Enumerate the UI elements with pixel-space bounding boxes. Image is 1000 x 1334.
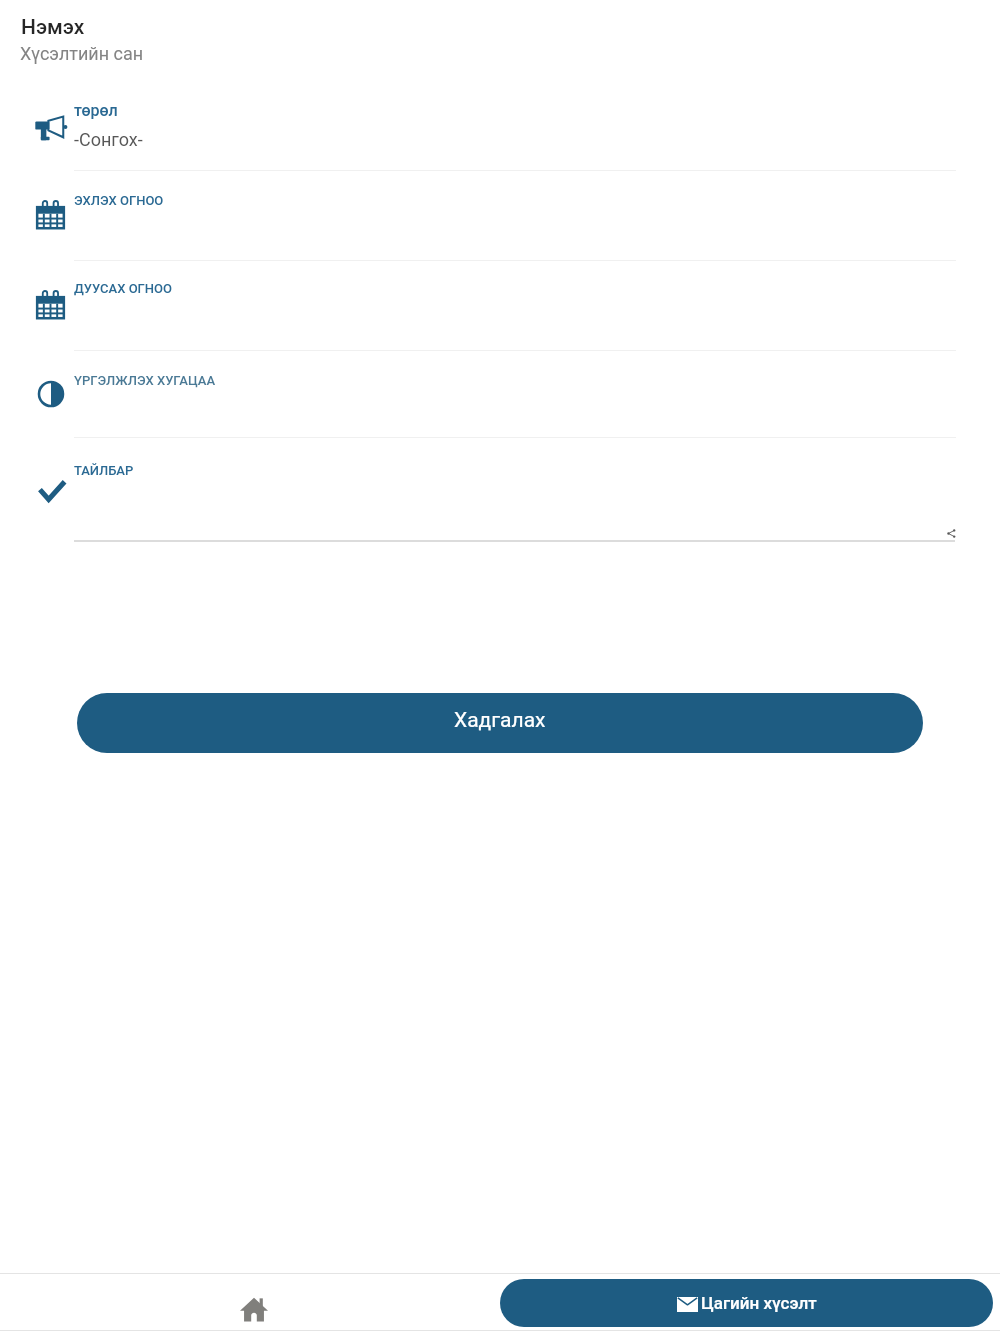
staticText: -Сонгох- [74,129,143,150]
button[interactable]: төрөл [0,81,1000,171]
staticText: ДУУСАХ ОГНОО [74,281,173,296]
button[interactable]: Цагийн хүсэлт [500,1279,993,1327]
staticText: Хүсэлтийн сан [20,43,144,64]
staticText: төрөл [74,101,118,120]
staticText: Цагийн хүсэлт [701,1293,817,1313]
button[interactable]: Хадгалах [77,693,923,753]
button[interactable]: Home [180,1274,326,1330]
staticText: ТАЙЛБАР [74,463,134,478]
button[interactable]: ЭХЛЭХ ОГНОО [0,171,1000,261]
button[interactable]: ДУУСАХ ОГНОО [0,261,1000,351]
staticText: Хадгалах [454,708,546,733]
staticText: ЭХЛЭХ ОГНОО [74,193,164,208]
staticText: Нэмэх [21,15,85,40]
button[interactable]: ҮРГЭЛЖЛЭХ ХУГАЦАА [0,351,1000,438]
button[interactable]: ТАЙЛБАР [0,438,1000,542]
staticText: ҮРГЭЛЖЛЭХ ХУГАЦАА [74,373,216,388]
